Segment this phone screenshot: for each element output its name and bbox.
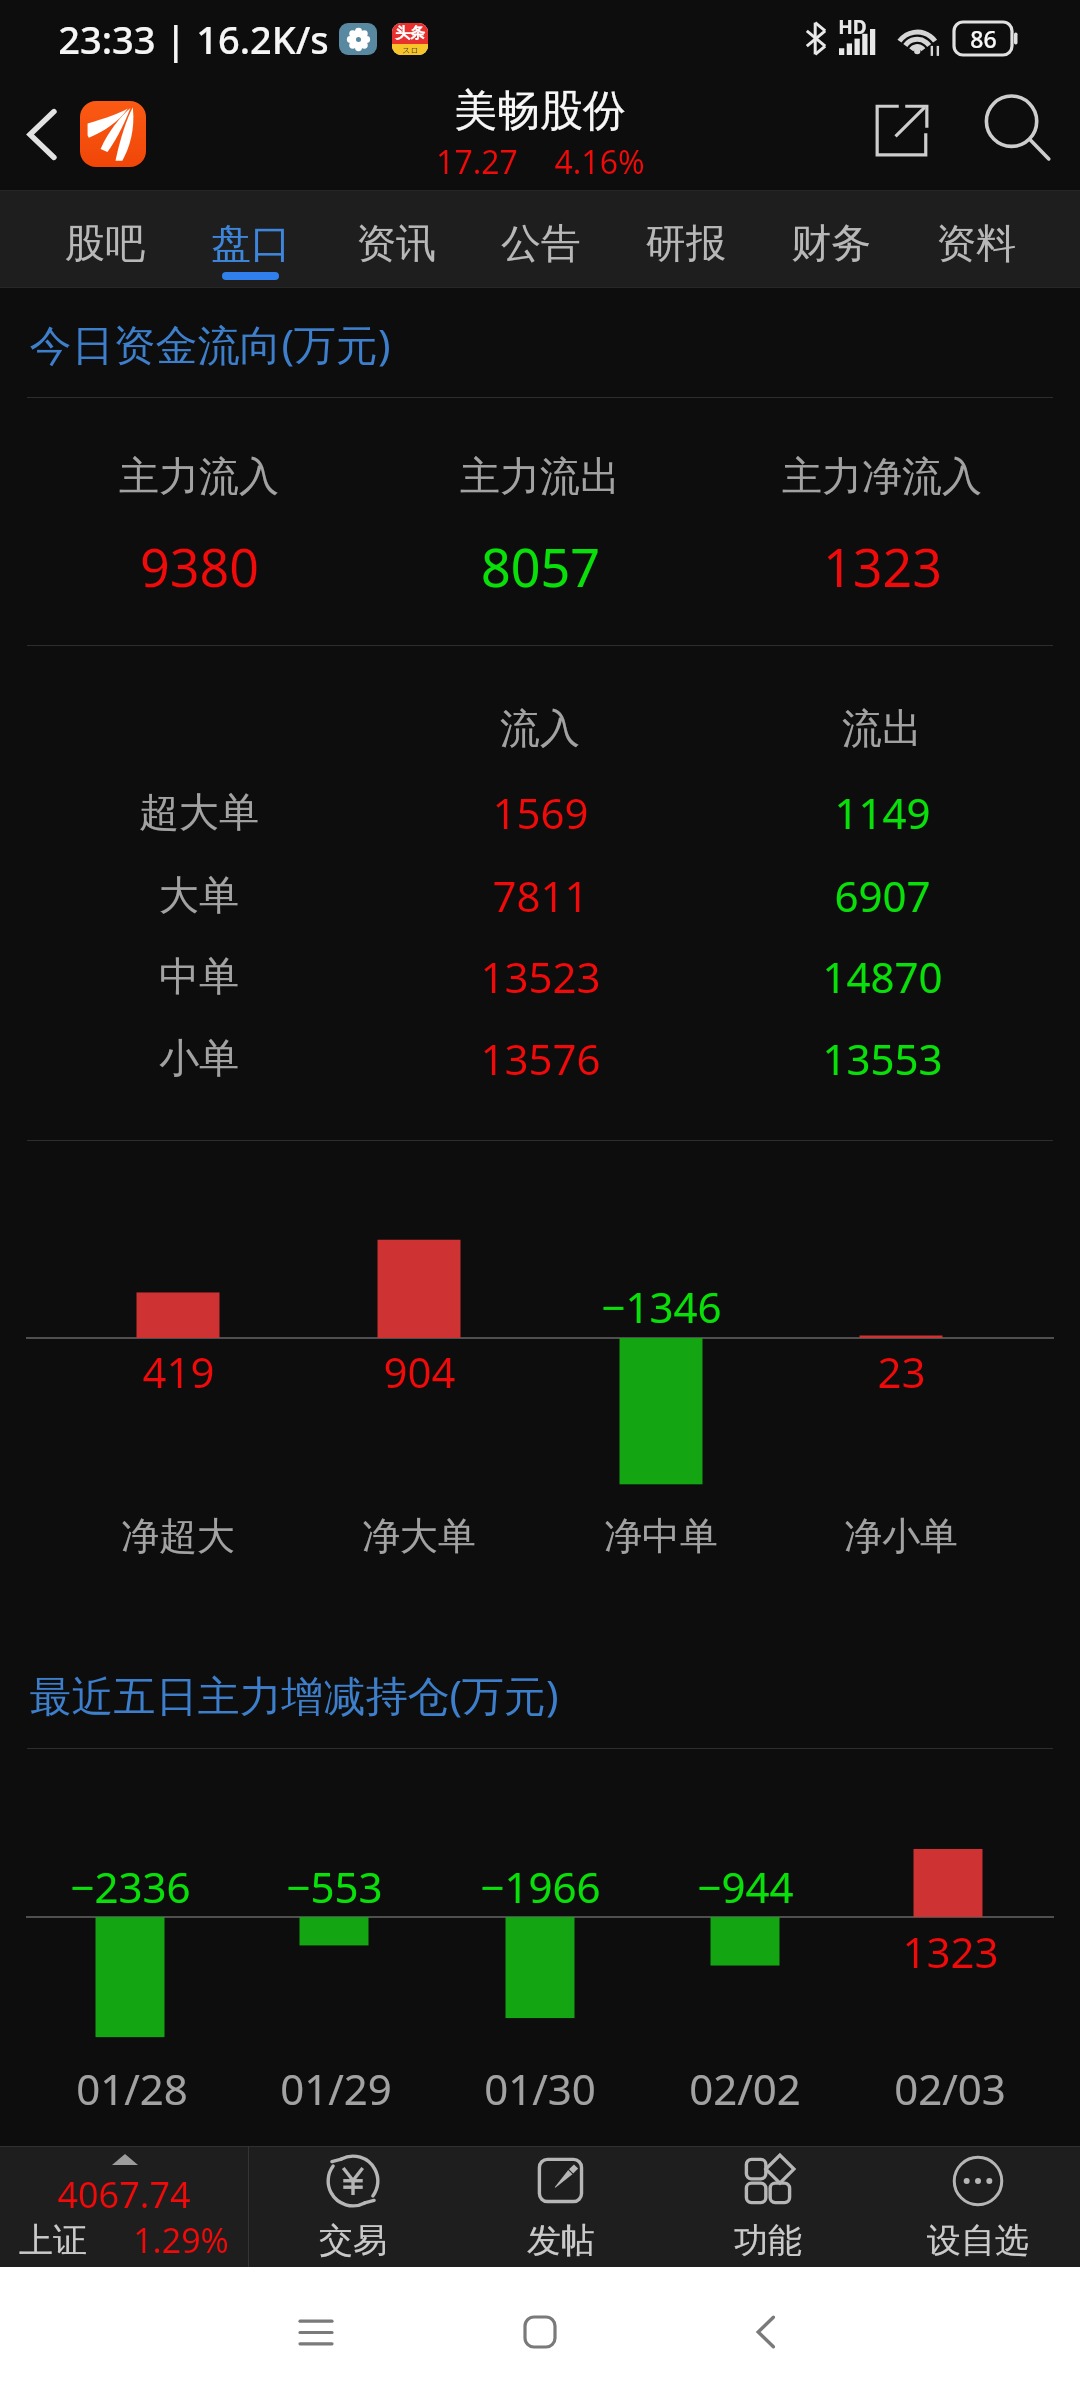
staticText: −1346 (601, 1278, 722, 1335)
button[interactable]: 资料 (903, 190, 1048, 288)
button[interactable]: Recents (216, 2282, 416, 2382)
staticText: −2336 (70, 1858, 191, 1915)
staticText: 6907 (834, 867, 931, 924)
staticText: 净小单 (844, 1512, 958, 1560)
staticText: 资料 (936, 218, 1016, 268)
staticText: 23 (877, 1343, 926, 1400)
staticText: 02/02 (689, 2060, 801, 2117)
staticText: 904 (383, 1343, 456, 1400)
button[interactable]: 交易 (249, 2146, 457, 2267)
staticText: 功能 (734, 2219, 802, 2262)
staticText: 资讯 (356, 218, 436, 268)
button[interactable]: Share (858, 86, 946, 174)
staticText: 最近五日主力增减持仓(万元) (29, 1666, 559, 1723)
staticText: 14870 (822, 948, 943, 1005)
staticText: 9380 (140, 531, 259, 602)
staticText: 主力流出 (460, 451, 620, 501)
staticText: −944 (697, 1858, 794, 1915)
staticText: −1966 (480, 1858, 601, 1915)
staticText: 13523 (480, 948, 601, 1005)
button[interactable]: 盘口 (178, 190, 323, 288)
button[interactable]: Home (440, 2282, 640, 2382)
staticText: 86 (970, 23, 997, 54)
staticText: 419 (142, 1343, 215, 1400)
staticText: 盘口 (211, 218, 291, 268)
staticText: 上证 (19, 2219, 87, 2262)
staticText: 1149 (834, 784, 931, 841)
button[interactable]: Search (973, 84, 1061, 172)
staticText: 02/03 (894, 2060, 1006, 2117)
staticText: −553 (286, 1858, 383, 1915)
button[interactable]: Back (665, 2282, 865, 2382)
staticText: 超大单 (139, 787, 259, 837)
button[interactable]: 功能 (664, 2146, 872, 2267)
staticText: 设自选 (927, 2219, 1029, 2262)
staticText: 4067.74 (57, 2170, 191, 2219)
staticText: 净中单 (604, 1512, 718, 1560)
staticText: 发帖 (527, 2219, 595, 2262)
staticText: スロ (402, 45, 419, 55)
staticText: 1323 (902, 1923, 999, 1980)
staticText: 23:33 | 16.2K/s (58, 13, 329, 65)
staticText: 8057 (481, 531, 600, 602)
staticText: 头条 (395, 24, 425, 43)
button[interactable]: 研报 (613, 190, 758, 288)
staticText: HD (838, 14, 867, 40)
staticText: 小单 (159, 1033, 239, 1083)
staticText: 美畅股份 (454, 84, 626, 138)
button[interactable]: 4067.74 (0, 2146, 248, 2267)
staticText: 研报 (646, 218, 726, 268)
staticText: 公告 (501, 218, 581, 268)
button[interactable]: 资讯 (323, 190, 468, 288)
staticText: 流入 (500, 703, 580, 753)
staticText: 净大单 (362, 1512, 476, 1560)
staticText: 今日资金流向(万元) (29, 315, 391, 372)
staticText: 01/28 (76, 2060, 188, 2117)
staticText: 主力流入 (119, 451, 279, 501)
staticText: 13553 (822, 1030, 943, 1087)
staticText: 财务 (791, 218, 871, 268)
staticText: 股吧 (65, 218, 145, 268)
button[interactable]: 设自选 (874, 2146, 1080, 2267)
staticText: 1569 (492, 784, 589, 841)
staticText: 大单 (159, 870, 239, 920)
staticText: 主力净流入 (782, 451, 982, 501)
staticText: 4.16% (554, 140, 645, 184)
button[interactable]: Home (80, 101, 146, 167)
staticText: 中单 (159, 951, 239, 1001)
staticText: 7811 (492, 867, 589, 924)
staticText: 交易 (319, 2219, 387, 2262)
button[interactable]: Back (4, 96, 80, 172)
staticText: 01/30 (484, 2060, 596, 2117)
staticText: 01/29 (280, 2060, 392, 2117)
button[interactable]: 股吧 (32, 190, 178, 288)
staticText: 流出 (842, 703, 922, 753)
button[interactable]: 发帖 (457, 2146, 665, 2267)
staticText: 1323 (823, 531, 942, 602)
button[interactable]: 财务 (758, 190, 903, 288)
staticText: 17.27 (436, 140, 518, 184)
staticText: 1.29% (133, 2217, 229, 2263)
staticText: 13576 (480, 1030, 601, 1087)
button[interactable]: 公告 (468, 190, 613, 288)
staticText: 净超大 (121, 1512, 235, 1560)
